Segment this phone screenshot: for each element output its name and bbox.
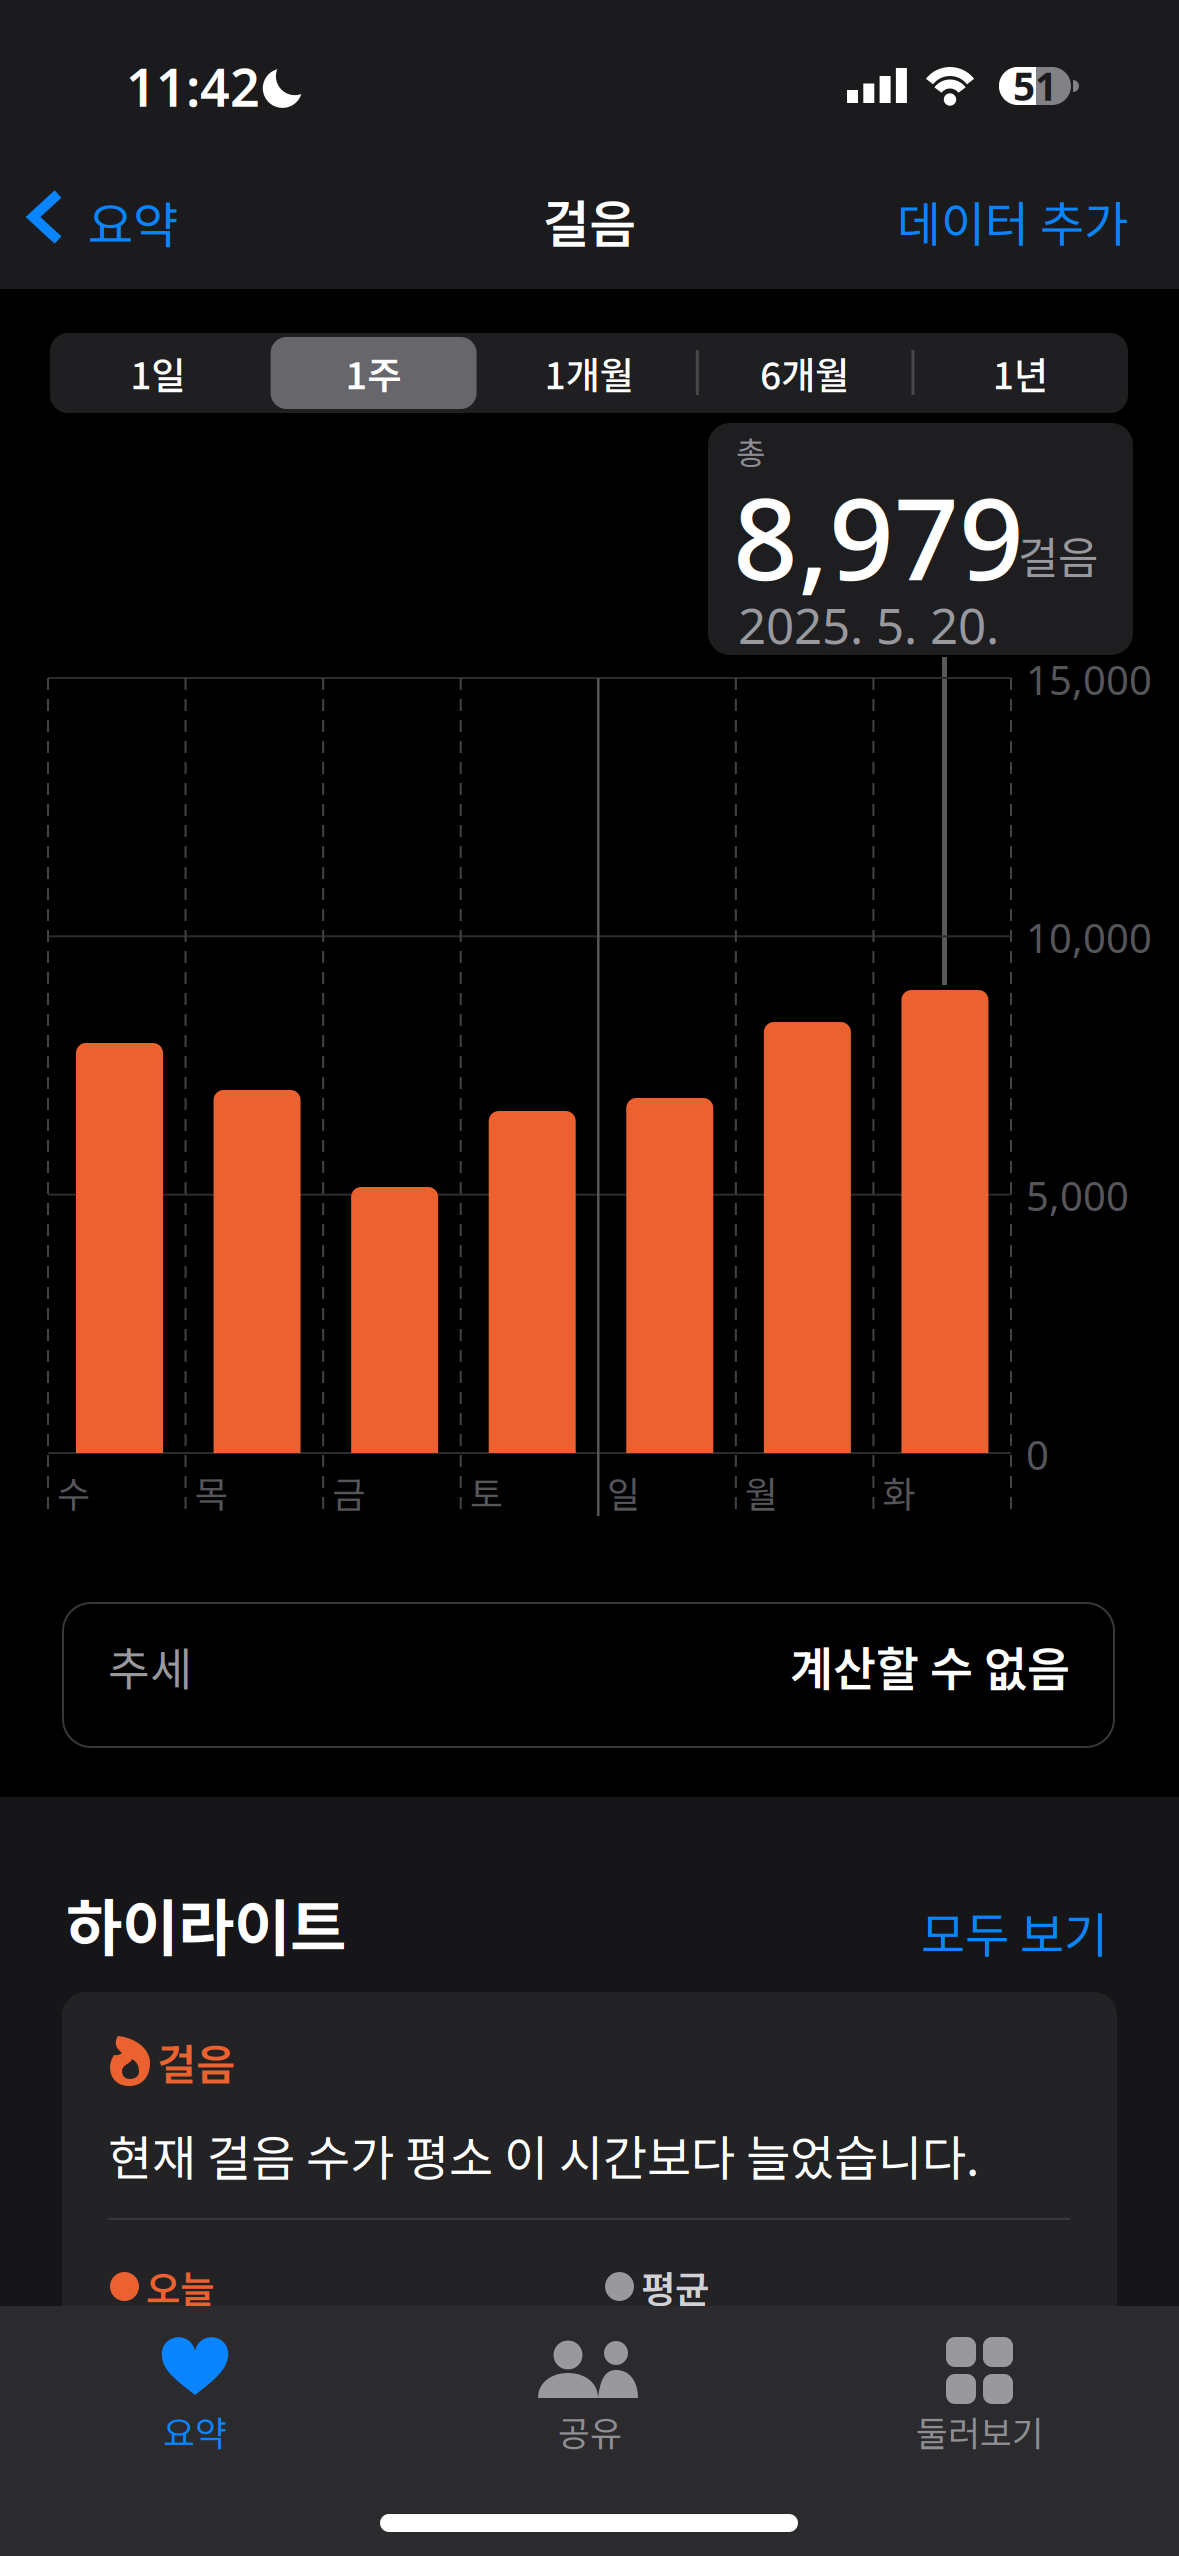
button[interactable]: 걸음 xyxy=(62,1992,1117,2552)
staticText: 1일 xyxy=(130,346,185,400)
staticText: 토 xyxy=(470,1466,503,1518)
staticText: 현재 걸음 수가 평소 이 시간보다 늘었습니다. xyxy=(108,2120,979,2189)
staticText: 걸음 xyxy=(1018,523,1098,587)
staticText: 추세 xyxy=(108,1633,192,1699)
staticText: 하이라이트 xyxy=(66,1879,346,1968)
staticText: 월 xyxy=(745,1466,778,1518)
staticText: 걸음 xyxy=(542,184,636,257)
button[interactable]: 요약 xyxy=(45,2306,345,2476)
staticText: 금 xyxy=(332,1466,365,1518)
button[interactable]: 추세 xyxy=(62,1602,1115,1748)
staticText: 목 xyxy=(195,1466,228,1518)
staticText: 걸음 xyxy=(157,2031,235,2093)
staticText: 요약 xyxy=(163,2406,227,2456)
button[interactable]: 1일 xyxy=(50,333,266,413)
staticText: 오늘 xyxy=(146,2260,214,2314)
button[interactable]: 모두 보기 xyxy=(808,1897,1108,1966)
staticText: 1개월 xyxy=(544,346,633,400)
button[interactable]: 데이터 추가 xyxy=(728,186,1128,255)
staticText: 공유 xyxy=(558,2406,622,2456)
staticText: 계산할 수 없음 xyxy=(790,1632,1070,1700)
staticText: 8,979 xyxy=(733,461,1024,611)
button[interactable]: 1개월 xyxy=(481,333,697,413)
button[interactable]: 6개월 xyxy=(697,333,912,413)
button[interactable]: 1년 xyxy=(912,333,1128,413)
staticText: 수 xyxy=(57,1466,90,1518)
staticText: 일 xyxy=(607,1466,640,1518)
staticText: 0 xyxy=(1026,1428,1049,1481)
button[interactable]: 요약 xyxy=(28,186,268,252)
button[interactable]: 공유 xyxy=(440,2306,740,2476)
staticText: 총 xyxy=(736,428,765,474)
staticText: 5,000 xyxy=(1026,1169,1129,1222)
staticText: 11:42 xyxy=(126,52,260,121)
staticText: 데이터 추가 xyxy=(897,186,1128,255)
button[interactable]: 둘러보기 xyxy=(830,2306,1130,2476)
staticText: 15,000 xyxy=(1026,653,1152,706)
staticText: 2025. 5. 20. xyxy=(738,592,999,657)
staticText: 화 xyxy=(882,1466,915,1518)
staticText: 요약 xyxy=(88,186,178,257)
staticText: 6개월 xyxy=(760,346,849,400)
staticText: 모두 보기 xyxy=(921,1897,1108,1966)
staticText: 1년 xyxy=(993,346,1048,400)
staticText: 1주 xyxy=(345,346,401,400)
staticText: 10,000 xyxy=(1026,911,1152,964)
staticText: 둘러보기 xyxy=(916,2406,1044,2456)
button[interactable]: 1주 xyxy=(266,333,481,413)
staticText: 51 xyxy=(1013,60,1057,111)
staticText: 평균 xyxy=(641,2260,709,2314)
